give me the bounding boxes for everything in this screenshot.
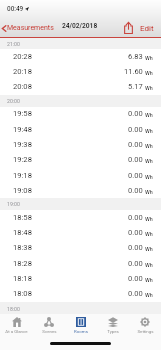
staticText: Wh [145, 189, 153, 195]
staticText: Wh [145, 158, 153, 164]
button[interactable]: 18:08 [0, 286, 161, 301]
staticText: Wh [145, 143, 153, 149]
staticText: 20:08 [13, 82, 32, 91]
staticText: 0.00 [128, 228, 143, 237]
staticText: Wh [145, 231, 153, 237]
staticText: Wh [145, 246, 153, 252]
staticText: 5.17 [128, 82, 143, 91]
staticText: Wh [145, 128, 153, 134]
staticText: Wh [145, 112, 153, 118]
button[interactable]: 18:18 [0, 271, 161, 286]
button[interactable]: 18:48 [0, 225, 161, 240]
staticText: 19:58 [13, 109, 32, 118]
button[interactable]: 19:48 [0, 122, 161, 137]
staticText: 19:08 [13, 186, 32, 195]
staticText: Measurements [7, 24, 54, 32]
staticText: Wh [145, 85, 153, 91]
staticText: 11.60 [124, 67, 143, 76]
button[interactable]: 19:08 [0, 183, 161, 198]
staticText: 0.00 [128, 186, 143, 195]
staticText: Rooms [74, 329, 88, 334]
staticText: 20:28 [13, 52, 32, 61]
staticText: 18:18 [13, 274, 32, 283]
staticText: Wh [145, 277, 153, 283]
staticText: 20:18 [13, 67, 32, 76]
button[interactable]: Settings [129, 314, 161, 350]
staticText: 19:38 [13, 140, 32, 149]
staticText: 21:00 [7, 41, 20, 47]
button[interactable]: 19:18 [0, 168, 161, 183]
staticText: Wh [145, 55, 153, 61]
staticText: 0.00 [128, 140, 143, 149]
staticText: Scenes [42, 329, 57, 334]
button[interactable]: 18:28 [0, 256, 161, 271]
staticText: 0.00 [128, 213, 143, 222]
staticText: 19:28 [13, 155, 32, 164]
button[interactable]: Edit [138, 21, 156, 36]
staticText: 0.00 [128, 171, 143, 180]
staticText: 6.83 [128, 52, 143, 61]
staticText: 18:28 [13, 259, 32, 268]
staticText: Edit [140, 24, 154, 33]
button[interactable]: 18:38 [0, 240, 161, 255]
staticText: Settings [137, 329, 154, 334]
button[interactable]: 20:18 [0, 64, 161, 79]
button[interactable]: Share [124, 22, 133, 34]
staticText: 19:00 [7, 201, 20, 207]
staticText: 18:00 [7, 306, 20, 312]
button[interactable]: At a Glance [0, 314, 33, 350]
staticText: 24/02/2018 [62, 22, 98, 30]
staticText: 19:48 [13, 125, 32, 134]
staticText: Wh [145, 216, 153, 222]
button[interactable]: 18:58 [0, 210, 161, 225]
staticText: 0.00 [128, 155, 143, 164]
button[interactable]: 19:58 [0, 106, 161, 121]
button[interactable]: 19:28 [0, 152, 161, 167]
button[interactable]: Scenes [33, 314, 65, 350]
button[interactable]: 20:08 [0, 79, 161, 94]
staticText: 18:48 [13, 228, 32, 237]
button[interactable]: 19:38 [0, 137, 161, 152]
staticText: Wh [145, 70, 153, 76]
staticText: 20:00 [7, 98, 20, 104]
staticText: 18:08 [13, 289, 32, 298]
staticText: 18:58 [13, 213, 32, 222]
button[interactable]: Measurements [1, 22, 55, 34]
button[interactable]: Types [97, 314, 129, 350]
staticText: 0.00 [128, 125, 143, 134]
staticText: Wh [145, 262, 153, 268]
staticText: 0.00 [128, 243, 143, 252]
staticText: 0.00 [128, 109, 143, 118]
staticText: 0.00 [128, 289, 143, 298]
staticText: Wh [145, 292, 153, 298]
staticText: Wh [145, 174, 153, 180]
staticText: 0.00 [128, 259, 143, 268]
staticText: 00:49 [7, 5, 24, 13]
button[interactable]: 20:28 [0, 49, 161, 64]
staticText: Types [107, 329, 119, 334]
staticText: 19:18 [13, 171, 32, 180]
staticText: 18:38 [13, 243, 32, 252]
staticText: At a Glance [5, 329, 28, 334]
button[interactable]: Rooms [65, 314, 97, 350]
staticText: 0.00 [128, 274, 143, 283]
